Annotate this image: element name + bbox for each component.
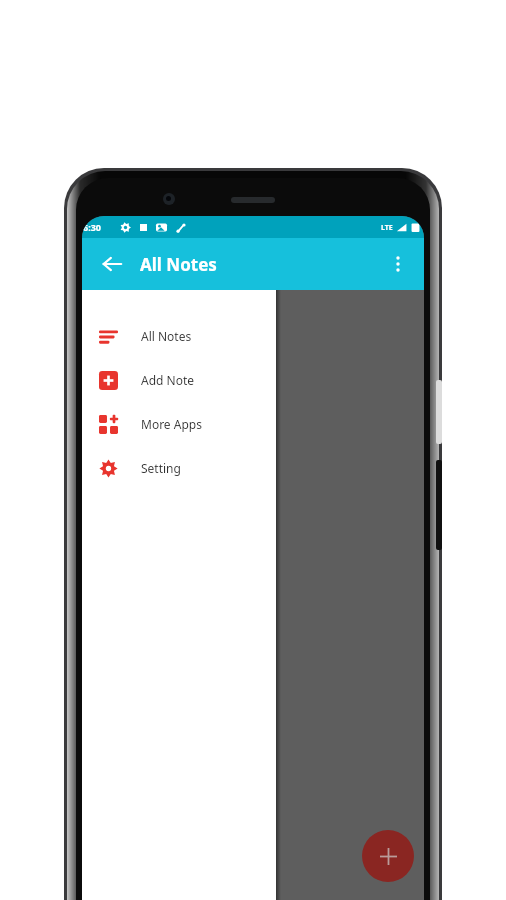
button[interactable]: More Apps	[82, 402, 276, 446]
staticText: LTE	[381, 223, 393, 233]
button[interactable]: More options	[378, 244, 418, 284]
button[interactable]: Add note	[362, 830, 414, 882]
button[interactable]: All Notes	[82, 314, 276, 358]
button[interactable]: Back	[90, 242, 134, 286]
button[interactable]: Add Note	[82, 358, 276, 402]
staticText: All Notes	[141, 328, 192, 344]
button[interactable]: Setting	[82, 446, 276, 490]
staticText: 6:30	[83, 221, 101, 233]
staticText: Setting	[141, 460, 181, 476]
staticText: All Notes	[140, 253, 217, 276]
staticText: Add Note	[141, 372, 195, 388]
staticText: More Apps	[141, 416, 202, 432]
